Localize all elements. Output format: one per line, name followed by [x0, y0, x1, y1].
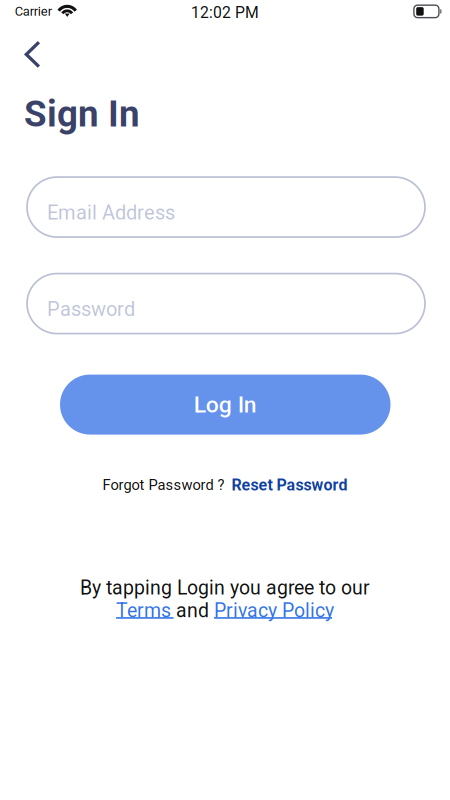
staticText: and — [176, 599, 214, 622]
button[interactable]: Back — [0, 35, 57, 73]
staticText: Carrier — [15, 4, 52, 19]
button[interactable]: Terms — [116, 599, 176, 622]
staticText: Email Address — [47, 201, 175, 224]
staticText: Forgot Password ? — [102, 476, 224, 494]
staticText: Reset Password — [231, 476, 347, 494]
staticText: Sign In — [24, 92, 140, 135]
button[interactable]: Log In — [60, 375, 390, 435]
staticText: Terms — [116, 599, 176, 622]
staticText: 12:02 PM — [191, 3, 259, 22]
staticText: Password — [47, 297, 135, 321]
staticText: Log In — [194, 391, 257, 418]
button[interactable]: Privacy Policy — [214, 599, 334, 622]
button[interactable]: Reset Password — [231, 476, 347, 494]
staticText: Privacy Policy — [214, 599, 334, 622]
staticText: By tapping Login you agree to our — [80, 576, 370, 599]
